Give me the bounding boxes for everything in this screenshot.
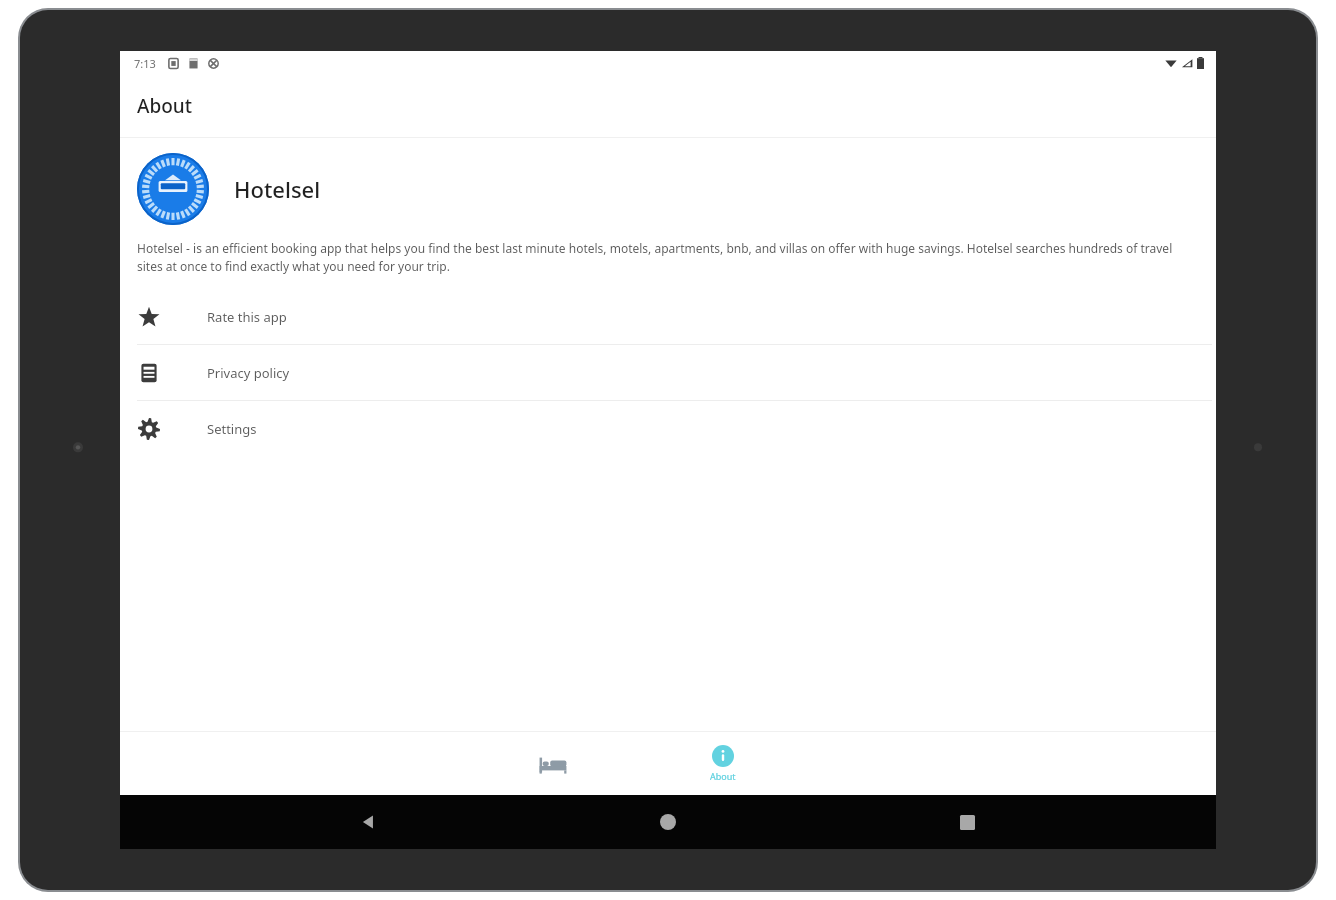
button[interactable]: Settings [120, 401, 1216, 456]
button[interactable]: About [668, 732, 778, 795]
button[interactable]: Home [641, 795, 695, 849]
staticText: Privacy policy [207, 364, 290, 382]
button[interactable]: Rate this app [120, 289, 1216, 344]
button[interactable]: Back [342, 795, 396, 849]
button[interactable]: Recent apps [940, 795, 994, 849]
button[interactable]: Hotels [498, 732, 608, 795]
button[interactable]: Privacy policy [120, 345, 1216, 400]
staticText: Hotelsel [234, 174, 321, 204]
staticText: About [137, 93, 193, 119]
staticText: Hotelsel - is an efficient booking app t… [137, 240, 1176, 275]
staticText: About [710, 770, 736, 782]
staticText: Settings [207, 420, 257, 438]
staticText: Rate this app [207, 308, 287, 326]
staticText: 7:13 [134, 56, 156, 71]
